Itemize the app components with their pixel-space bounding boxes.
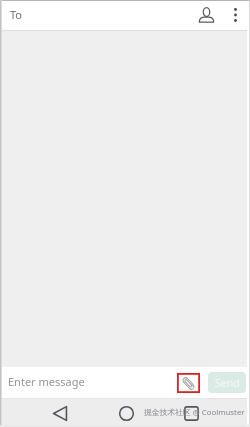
- staticText: Enter message: [8, 374, 85, 389]
- button[interactable]: Back: [47, 400, 73, 426]
- button[interactable]: Attach file: [177, 373, 200, 393]
- staticText: Send: [215, 376, 240, 390]
- button[interactable]: Enter message: [2, 368, 175, 398]
- button[interactable]: More options: [225, 2, 245, 28]
- button[interactable]: Home: [113, 400, 139, 426]
- button[interactable]: To: [2, 1, 192, 30]
- button[interactable]: Contacts: [193, 2, 219, 28]
- staticText: To: [10, 7, 23, 22]
- button[interactable]: Recent apps: [178, 400, 204, 426]
- staticText: 掘金技术社区 @ Coolmuster: [144, 407, 245, 418]
- button[interactable]: Send: [208, 372, 246, 393]
